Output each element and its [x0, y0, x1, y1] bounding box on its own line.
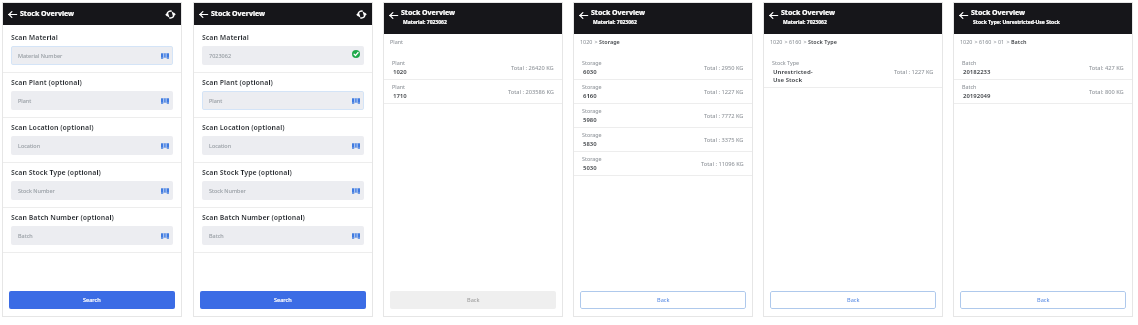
- button[interactable]: Batch: [202, 226, 364, 245]
- staticText: 6030: [583, 68, 597, 76]
- staticText: Location: [209, 142, 232, 149]
- button[interactable]: Back: [767, 9, 779, 21]
- staticText: Total : 1227 KG: [894, 68, 934, 76]
- staticText: 20182233: [963, 68, 991, 76]
- staticText: 6160: [979, 38, 992, 45]
- button[interactable]: Location: [11, 136, 173, 155]
- staticText: Scan Batch Number (optional): [202, 213, 305, 222]
- staticText: 1020: [580, 38, 593, 45]
- button[interactable]: Search: [9, 291, 175, 309]
- staticText: Stock Number: [209, 187, 246, 194]
- staticText: 5030: [583, 164, 597, 172]
- staticText: 1020: [770, 38, 783, 45]
- staticText: Stock Overview: [401, 8, 456, 18]
- staticText: 01: [998, 38, 1005, 45]
- staticText: 20192049: [963, 92, 991, 100]
- staticText: Total : 2950 KG: [704, 64, 744, 72]
- button[interactable]: Material Number: [11, 46, 173, 65]
- staticText: Total : 3375 KG: [704, 136, 744, 144]
- staticText: Scan Batch Number (optional): [11, 213, 114, 222]
- staticText: >: [783, 38, 789, 45]
- staticText: Stock Overview: [781, 8, 836, 18]
- button[interactable]: Batch: [11, 226, 173, 245]
- staticText: Scan Plant (optional): [202, 78, 273, 87]
- staticText: Batch: [1011, 38, 1027, 45]
- staticText: Scan Location (optional): [202, 123, 285, 132]
- staticText: Total : 1227 KG: [704, 88, 744, 96]
- staticText: Batch: [962, 83, 977, 90]
- button[interactable]: Back: [957, 9, 969, 21]
- staticText: Total : 7772 KG: [704, 112, 744, 120]
- staticText: Plant: [392, 83, 405, 90]
- staticText: >: [802, 38, 808, 45]
- button[interactable]: Plant: [392, 59, 554, 76]
- button[interactable]: Storage: [582, 155, 744, 172]
- staticText: Stock Number: [18, 187, 55, 194]
- staticText: >: [992, 38, 998, 45]
- staticText: Total: 427 KG: [1089, 64, 1124, 72]
- button[interactable]: Search: [200, 291, 366, 309]
- staticText: Total : 11096 KG: [701, 160, 744, 168]
- staticText: Plant: [390, 38, 403, 45]
- staticText: 5980: [583, 116, 597, 124]
- button[interactable]: Stock Type: [772, 59, 934, 84]
- staticText: Back: [467, 296, 480, 304]
- staticText: Plant: [209, 97, 223, 104]
- staticText: Unrestricted- Use Stock: [773, 68, 813, 84]
- staticText: Back: [657, 296, 670, 304]
- button[interactable]: Back: [960, 291, 1126, 309]
- staticText: 1710: [393, 92, 407, 100]
- button[interactable]: Batch: [962, 59, 1124, 76]
- button[interactable]: Stock Number: [202, 181, 364, 200]
- button[interactable]: Storage: [582, 83, 744, 100]
- staticText: >: [973, 38, 979, 45]
- staticText: Stock Overview: [20, 9, 75, 19]
- button[interactable]: Storage: [582, 107, 744, 124]
- button[interactable]: Location: [202, 136, 364, 155]
- staticText: Storage: [582, 155, 602, 162]
- button[interactable]: Storage: [582, 131, 744, 148]
- button[interactable]: Plant: [392, 83, 554, 100]
- staticText: Stock Type: [808, 38, 837, 45]
- staticText: 1020: [393, 68, 407, 76]
- button[interactable]: 7023062: [202, 46, 364, 65]
- staticText: 6160: [583, 92, 597, 100]
- staticText: Material Number: [18, 52, 63, 59]
- button[interactable]: Plant: [11, 91, 173, 110]
- staticText: Storage: [599, 38, 620, 45]
- staticText: Plant: [18, 97, 32, 104]
- button[interactable]: Back: [770, 291, 936, 309]
- button[interactable]: Back: [577, 9, 589, 21]
- button[interactable]: Back: [390, 291, 556, 309]
- staticText: Scan Stock Type (optional): [202, 168, 292, 177]
- staticText: Scan Stock Type (optional): [11, 168, 101, 177]
- staticText: Stock Overview: [591, 8, 646, 18]
- button[interactable]: Back: [6, 8, 18, 20]
- staticText: Material: 7023062: [403, 19, 447, 26]
- staticText: Stock Type: Unrestricted-Use Stock: [973, 19, 1060, 26]
- button[interactable]: Back: [580, 291, 746, 309]
- button[interactable]: Sync: [164, 8, 176, 20]
- button[interactable]: Back: [387, 9, 399, 21]
- staticText: 5830: [583, 140, 597, 148]
- button[interactable]: Sync: [355, 8, 367, 20]
- staticText: Total : 203586 KG: [508, 88, 554, 96]
- staticText: Total : 26420 KG: [511, 64, 554, 72]
- staticText: Material: 7023062: [783, 19, 827, 26]
- staticText: Storage: [582, 59, 602, 66]
- button[interactable]: Storage: [582, 59, 744, 76]
- staticText: 1020: [960, 38, 973, 45]
- staticText: Storage: [582, 131, 602, 138]
- button[interactable]: Stock Number: [11, 181, 173, 200]
- staticText: Batch: [962, 59, 977, 66]
- button[interactable]: Plant: [202, 91, 364, 110]
- staticText: Storage: [582, 83, 602, 90]
- button[interactable]: Back: [197, 8, 209, 20]
- staticText: Stock Overview: [971, 8, 1026, 18]
- staticText: Back: [847, 296, 860, 304]
- staticText: 6160: [789, 38, 802, 45]
- staticText: Scan Plant (optional): [11, 78, 82, 87]
- button[interactable]: Batch: [962, 83, 1124, 100]
- staticText: Batch: [18, 232, 33, 239]
- staticText: >: [1005, 38, 1011, 45]
